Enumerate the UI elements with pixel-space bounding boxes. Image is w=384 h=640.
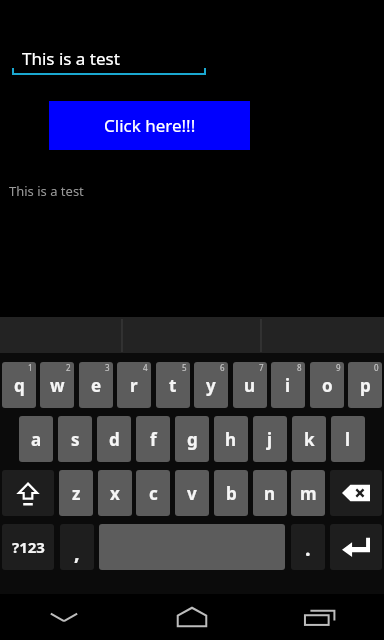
button[interactable]: w <box>40 362 74 408</box>
button[interactable]: . <box>291 524 325 570</box>
staticText: 4 <box>143 362 148 373</box>
button[interactable]: Click here!!! <box>49 101 250 150</box>
button[interactable]: Enter <box>330 524 382 570</box>
button[interactable]: Home <box>128 594 256 640</box>
staticText: s <box>71 428 80 451</box>
staticText: x <box>110 482 120 505</box>
staticText: a <box>31 428 42 451</box>
button[interactable]: o <box>310 362 344 408</box>
staticText: w <box>50 374 65 397</box>
staticText: This is a test <box>22 47 120 70</box>
button[interactable]: h <box>214 416 248 462</box>
staticText: i <box>285 374 291 397</box>
staticText: u <box>244 374 256 397</box>
staticText: j <box>267 428 273 451</box>
staticText: k <box>304 428 315 451</box>
button[interactable]: r <box>117 362 151 408</box>
button[interactable]: t <box>156 362 190 408</box>
button[interactable]: i <box>271 362 305 408</box>
button[interactable]: q <box>2 362 36 408</box>
staticText: b <box>226 482 237 505</box>
button[interactable]: a <box>19 416 53 462</box>
staticText: 7 <box>259 362 264 373</box>
staticText: . <box>305 535 311 562</box>
button[interactable]: e <box>79 362 113 408</box>
staticText: 1 <box>28 362 33 373</box>
button[interactable]: u <box>233 362 267 408</box>
staticText: y <box>206 374 216 397</box>
staticText: z <box>72 482 81 505</box>
button[interactable]: x <box>98 470 132 516</box>
staticText: 0 <box>374 362 379 373</box>
button[interactable]: l <box>331 416 365 462</box>
button[interactable]: d <box>97 416 131 462</box>
button[interactable]: Recent apps <box>256 594 384 640</box>
staticText: g <box>187 428 198 451</box>
button[interactable]: m <box>291 470 325 516</box>
staticText: q <box>14 374 25 397</box>
staticText: f <box>150 428 157 451</box>
staticText: ?123 <box>12 537 45 557</box>
staticText: e <box>91 374 102 397</box>
staticText: d <box>109 428 120 451</box>
staticText: 2 <box>66 362 71 373</box>
staticText: 3 <box>105 362 110 373</box>
button[interactable]: z <box>59 470 93 516</box>
button[interactable]: c <box>136 470 170 516</box>
button[interactable]: j <box>253 416 287 462</box>
button[interactable]: Backspace <box>330 470 382 516</box>
staticText: v <box>187 482 197 505</box>
button[interactable]: v <box>175 470 209 516</box>
button[interactable]: n <box>253 470 287 516</box>
button[interactable]: b <box>214 470 248 516</box>
staticText: t <box>169 374 177 397</box>
button[interactable]: Hide keyboard <box>0 594 128 640</box>
button[interactable]: p <box>348 362 382 408</box>
button[interactable]: s <box>58 416 92 462</box>
staticText: 8 <box>297 362 302 373</box>
button[interactable]: f <box>136 416 170 462</box>
button[interactable]: Shift <box>2 470 54 516</box>
staticText: This is a test <box>9 182 84 200</box>
staticText: 5 <box>182 362 187 373</box>
staticText: , <box>74 539 80 566</box>
staticText: o <box>322 374 333 397</box>
button[interactable]: k <box>292 416 326 462</box>
staticText: Click here!!! <box>104 114 196 137</box>
staticText: m <box>300 482 317 505</box>
staticText: c <box>149 482 158 505</box>
staticText: h <box>225 428 237 451</box>
button[interactable]: ?123 <box>2 524 54 570</box>
button[interactable]: g <box>175 416 209 462</box>
staticText: l <box>345 428 351 451</box>
staticText: n <box>264 482 276 505</box>
button[interactable]: , <box>60 524 94 570</box>
button[interactable]: y <box>194 362 228 408</box>
staticText: 9 <box>336 362 341 373</box>
staticText: p <box>360 374 371 397</box>
staticText: r <box>130 374 138 397</box>
staticText: 6 <box>220 362 225 373</box>
